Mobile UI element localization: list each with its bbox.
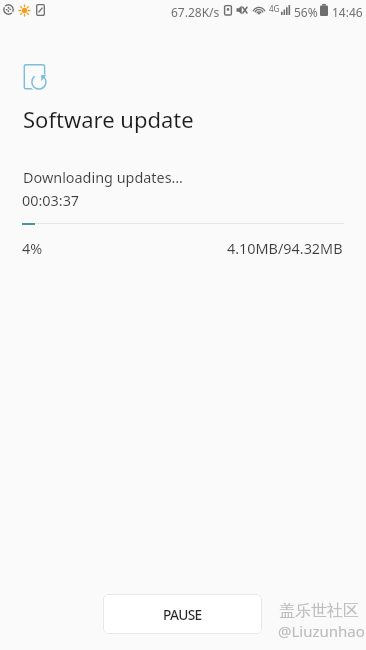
staticText: 4% <box>22 239 43 259</box>
staticText: PAUSE <box>163 605 202 624</box>
staticText: 14:46 <box>332 4 363 20</box>
staticText: Software update <box>23 104 194 134</box>
staticText: 4G <box>269 3 280 14</box>
button[interactable]: PAUSE <box>103 594 262 634</box>
staticText: @Liuzunhao <box>278 621 365 641</box>
staticText: 00:03:37 <box>22 191 80 211</box>
staticText: 4.10MB/94.32MB <box>227 239 343 259</box>
staticText: 盖乐世社区 <box>279 601 359 621</box>
staticText: 56% <box>294 4 318 20</box>
staticText: Downloading updates… <box>23 168 183 188</box>
other: Software update <box>22 62 50 92</box>
staticText: 67.28K/s <box>171 4 220 20</box>
